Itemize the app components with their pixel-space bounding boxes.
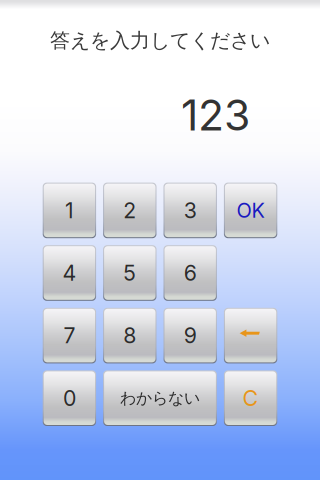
staticText: 3: [184, 197, 197, 223]
staticText: 8: [123, 323, 136, 348]
staticText: 答えを入力してください: [50, 28, 270, 53]
button[interactable]: 8: [103, 308, 156, 363]
staticText: 5: [123, 260, 136, 286]
button[interactable]: 6: [163, 245, 217, 301]
button[interactable]: OK: [224, 183, 277, 238]
staticText: 0: [63, 385, 76, 411]
button[interactable]: C: [224, 370, 277, 426]
button[interactable]: 2: [103, 183, 156, 238]
staticText: 9: [184, 323, 197, 348]
button[interactable]: 0: [43, 370, 96, 426]
staticText: 4: [62, 260, 76, 286]
staticText: 1: [65, 197, 74, 223]
staticText: 2: [123, 197, 136, 223]
button[interactable]: 1: [43, 183, 96, 238]
staticText: 123: [181, 89, 250, 141]
button[interactable]: 9: [163, 308, 217, 363]
button[interactable]: 4: [43, 245, 96, 301]
staticText: わからない: [120, 388, 200, 408]
button[interactable]: 7: [43, 308, 96, 363]
button[interactable]: わからない: [103, 370, 217, 426]
staticText: 6: [184, 260, 197, 286]
staticText: 7: [63, 323, 75, 348]
button[interactable]: Backspace: [224, 308, 277, 363]
staticText: C: [243, 385, 259, 411]
button[interactable]: 3: [163, 183, 217, 238]
button[interactable]: 5: [103, 245, 156, 301]
staticText: OK: [237, 198, 265, 222]
